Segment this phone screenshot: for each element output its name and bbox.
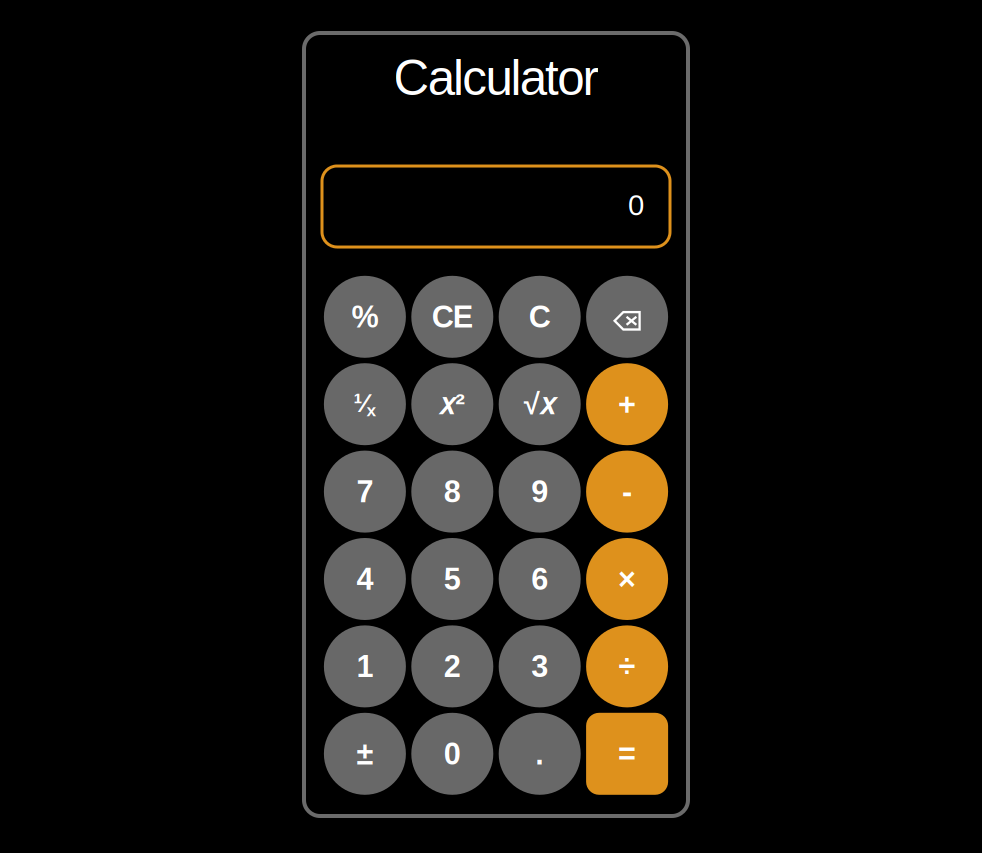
button[interactable]: + (586, 363, 668, 445)
staticText: + (618, 387, 636, 421)
button[interactable]: 2 (411, 625, 493, 707)
button[interactable]: 9 (499, 451, 581, 533)
staticText: Calculator (394, 50, 598, 105)
button[interactable]: 0 (411, 713, 493, 795)
staticText: 3 (531, 649, 548, 684)
staticText: 4 (356, 562, 373, 596)
button[interactable]: × (586, 538, 668, 620)
staticText: 1 (356, 649, 373, 684)
button[interactable]: 4 (324, 538, 406, 620)
button[interactable]: 𝑥² (411, 363, 493, 445)
button[interactable]: CE (411, 276, 493, 358)
staticText: - (622, 474, 632, 509)
button[interactable]: % (324, 276, 406, 358)
button[interactable]: . (499, 713, 581, 795)
staticText: √𝑥 (524, 388, 556, 421)
button[interactable]: C (499, 276, 581, 358)
staticText: C (529, 300, 551, 334)
staticText: 7 (356, 474, 373, 509)
button[interactable]: - (586, 451, 668, 533)
staticText: = (618, 737, 636, 771)
button[interactable]: Backspace (586, 276, 668, 358)
staticText: 0 (628, 189, 644, 221)
staticText: 2 (444, 649, 461, 684)
staticText: × (618, 562, 636, 596)
staticText: 6 (531, 562, 548, 596)
staticText: ÷ (619, 649, 636, 684)
button[interactable]: 6 (499, 538, 581, 620)
staticText: 8 (444, 474, 461, 509)
staticText: % (351, 300, 378, 334)
button[interactable]: √𝑥 (499, 363, 581, 445)
staticText: 5 (444, 562, 461, 596)
button[interactable]: 3 (499, 625, 581, 707)
button[interactable]: 7 (324, 451, 406, 533)
button[interactable]: One over x (324, 363, 406, 445)
staticText: 9 (531, 474, 548, 509)
button[interactable]: = (586, 713, 668, 795)
button[interactable]: 5 (411, 538, 493, 620)
button[interactable]: ± (324, 713, 406, 795)
staticText: 0 (444, 737, 461, 771)
staticText: CE (432, 300, 473, 334)
staticText: 𝑥² (439, 388, 465, 421)
button[interactable]: 8 (411, 451, 493, 533)
staticText: ± (356, 737, 373, 771)
staticText: . (535, 737, 544, 771)
button[interactable]: ÷ (586, 625, 668, 707)
staticText: ¹⁄x (353, 389, 376, 420)
button[interactable]: 1 (324, 625, 406, 707)
